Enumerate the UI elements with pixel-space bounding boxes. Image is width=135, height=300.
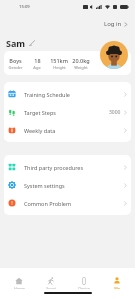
staticText: 18 <box>34 57 41 64</box>
staticText: 15:09 <box>19 4 30 10</box>
button[interactable]: Edit profile name <box>29 40 35 46</box>
button[interactable]: Weekly data <box>4 121 131 139</box>
staticText: Height <box>53 65 66 70</box>
button[interactable]: Sport <box>35 277 67 289</box>
button[interactable]: Training Schedule <box>4 85 131 103</box>
staticText: Weight <box>74 65 88 70</box>
staticText: Target Steps <box>24 109 56 116</box>
staticText: Sport <box>46 286 56 289</box>
staticText: 20.0kg <box>72 57 90 64</box>
staticText: Common Problem <box>24 200 72 207</box>
staticText: Me <box>114 286 120 289</box>
staticText: System settings <box>24 182 65 189</box>
button[interactable]: Profile avatar <box>100 41 128 69</box>
button[interactable]: Log in <box>96 17 135 31</box>
staticText: Home <box>14 286 25 289</box>
staticText: Boys <box>9 57 22 64</box>
button[interactable]: Home <box>3 277 35 289</box>
button[interactable]: Third party procedures <box>4 158 131 176</box>
button[interactable]: System settings <box>4 176 131 194</box>
staticText: Age <box>33 65 41 70</box>
staticText: Sam <box>6 37 26 49</box>
staticText: Device <box>78 286 90 289</box>
staticText: Third party procedures <box>24 164 84 171</box>
button[interactable]: Device <box>67 277 100 289</box>
button[interactable]: Common Problem <box>4 194 131 212</box>
staticText: Training Schedule <box>24 91 70 98</box>
button[interactable]: Me <box>100 277 133 289</box>
staticText: 3000 <box>109 109 121 116</box>
staticText: 151km <box>50 57 68 64</box>
staticText: Gender <box>8 65 23 70</box>
staticText: Weekly data <box>24 127 56 134</box>
staticText: Log in <box>104 20 122 28</box>
button[interactable]: Target Steps <box>4 103 131 121</box>
